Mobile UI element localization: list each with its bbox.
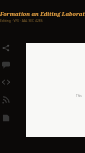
staticText: This (76, 94, 82, 98)
button[interactable]: Document (1, 113, 10, 122)
button[interactable]: Share (1, 43, 10, 52)
button[interactable]: Code (1, 77, 10, 86)
staticText: Formation an Editing Laboratory (0, 10, 85, 17)
staticText: Editing · VFX · AAL SEC 4286 (0, 18, 43, 22)
button[interactable]: Feed (1, 95, 10, 104)
button[interactable]: Comments (1, 60, 10, 69)
